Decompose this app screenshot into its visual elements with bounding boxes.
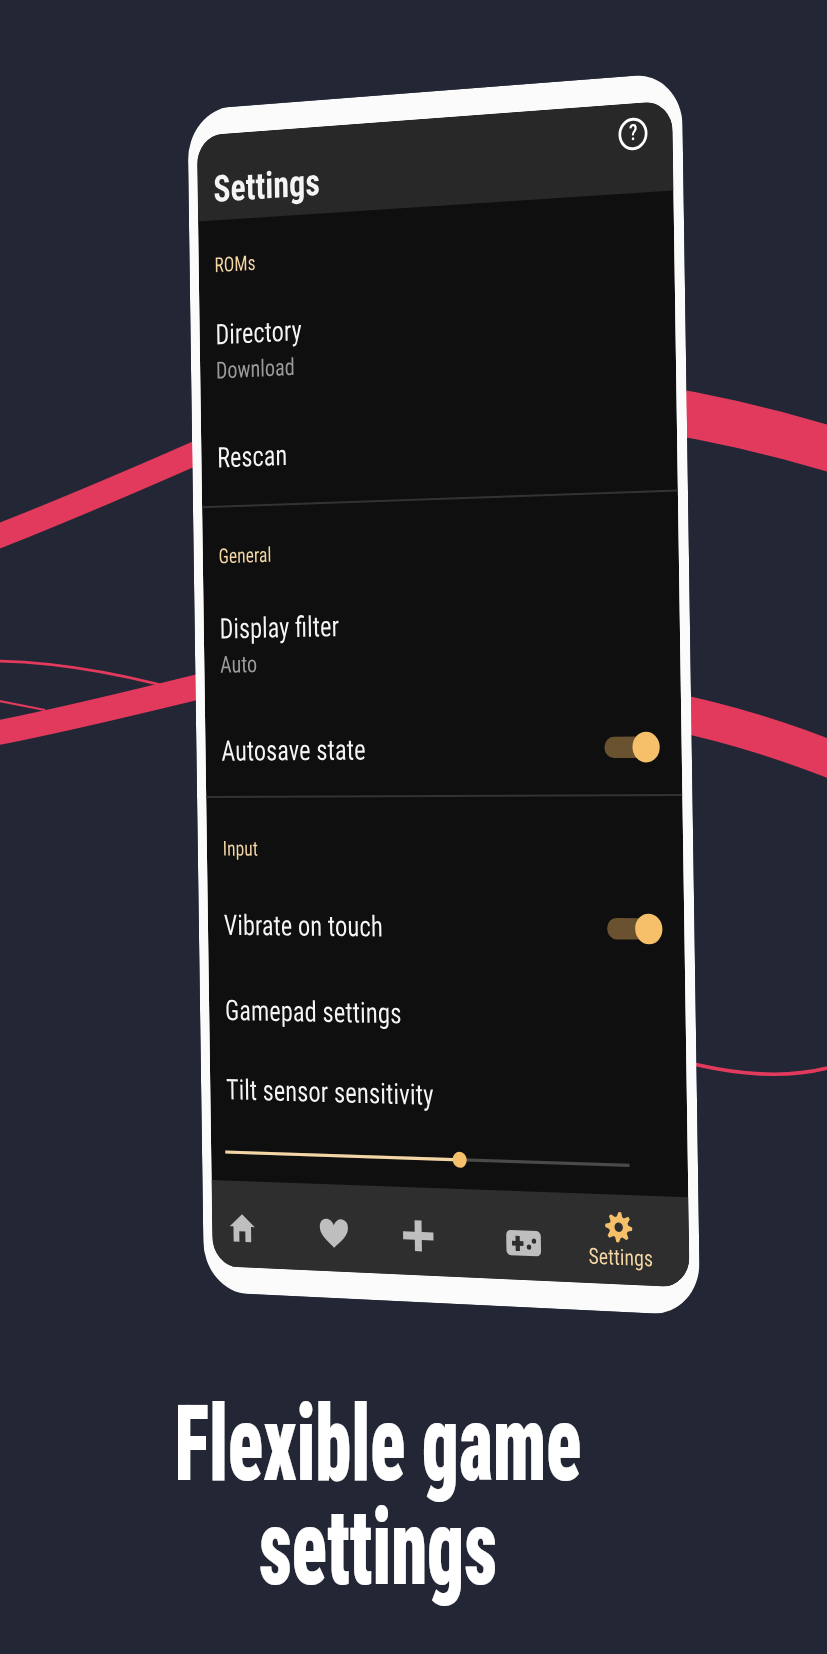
staticText: Autosave state bbox=[221, 733, 366, 768]
staticText: Settings bbox=[213, 160, 320, 212]
button[interactable]: Display filter bbox=[203, 595, 680, 652]
staticText: Download bbox=[216, 353, 295, 385]
button[interactable]: Gamepad bbox=[488, 1218, 558, 1267]
staticText: Input bbox=[222, 837, 259, 861]
staticText: Auto bbox=[220, 650, 258, 679]
button[interactable]: Vibrate on touch bbox=[208, 902, 685, 953]
button[interactable]: Autosave state bbox=[205, 723, 682, 774]
staticText: Vibrate on touch bbox=[223, 908, 383, 943]
button[interactable]: Home bbox=[212, 1204, 275, 1252]
button[interactable]: Rescan bbox=[201, 416, 677, 481]
staticText: Settings bbox=[588, 1243, 654, 1273]
staticText: Rescan bbox=[217, 438, 288, 474]
button[interactable]: Tilt sensor sensitivity bbox=[210, 1066, 687, 1125]
staticText: General bbox=[218, 543, 272, 569]
button[interactable]: Gamepad settings bbox=[209, 987, 686, 1042]
button[interactable]: Favorites bbox=[300, 1208, 367, 1256]
staticText: ROMs bbox=[214, 251, 256, 278]
button[interactable]: Add bbox=[384, 1211, 452, 1260]
staticText: Tilt sensor sensitivity bbox=[226, 1073, 434, 1112]
button[interactable]: Help bbox=[616, 116, 650, 151]
staticText: ? bbox=[629, 119, 638, 146]
button[interactable]: Directory bbox=[199, 287, 675, 358]
staticText: Display filter bbox=[219, 609, 340, 645]
staticText: Directory bbox=[215, 313, 302, 351]
staticText: Gamepad settings bbox=[225, 993, 402, 1030]
button[interactable]: Settings bbox=[579, 1193, 662, 1273]
staticText: Flexible game settings bbox=[172, 1382, 583, 1609]
